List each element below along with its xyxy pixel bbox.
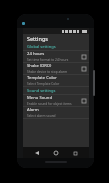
button[interactable]: Toggle Shake (DRO)	[81, 66, 86, 71]
staticText: 24 hours	[27, 51, 45, 57]
staticText: Template Color	[27, 75, 57, 81]
staticText: Enable sound for object items	[27, 102, 72, 106]
button[interactable]: Back	[32, 148, 42, 158]
button[interactable]: Shake (DRO)	[23, 63, 89, 74]
staticText: Select Template Color	[27, 82, 60, 86]
staticText: Set time format to 24 hours	[27, 58, 69, 62]
button[interactable]: 24 hours	[23, 51, 89, 62]
button[interactable]: Home	[51, 148, 61, 158]
staticText: Global settings	[27, 44, 56, 49]
button[interactable]: Alarm	[23, 107, 89, 118]
staticText: Menu Sound	[27, 95, 53, 101]
button[interactable]: Toggle Menu Sound	[81, 98, 86, 103]
staticText: Settings	[27, 35, 48, 42]
button[interactable]: Recents	[70, 148, 80, 158]
button[interactable]: Toggle 24 hours	[81, 54, 86, 59]
staticText: Shake device to stop alarm	[27, 70, 68, 74]
button[interactable]: Template Color	[23, 75, 89, 86]
button[interactable]: Menu Sound	[23, 95, 89, 106]
staticText: Sound settings	[27, 88, 56, 93]
staticText: Select alarm sound	[27, 114, 56, 118]
staticText: Alarm	[27, 107, 39, 113]
staticText: Shake (DRO)	[27, 63, 52, 69]
